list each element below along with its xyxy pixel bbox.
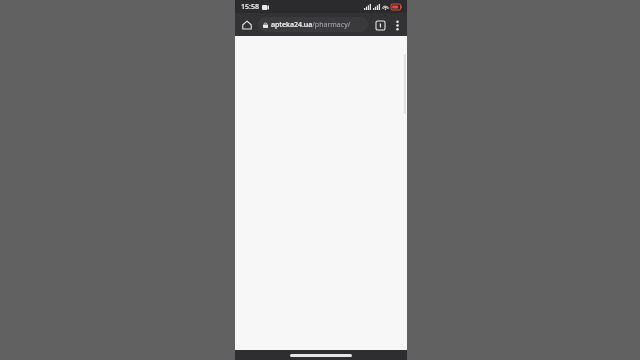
staticText: apteka24.ua/pharmacy/zapc bbox=[271, 20, 364, 30]
button[interactable]: More options bbox=[389, 17, 405, 33]
button[interactable]: Home bbox=[238, 16, 256, 34]
button[interactable]: apteka24.ua/pharmacy/zapc bbox=[258, 17, 368, 32]
staticText: 15:58 bbox=[241, 2, 259, 12]
button[interactable]: Tabs bbox=[371, 16, 389, 34]
